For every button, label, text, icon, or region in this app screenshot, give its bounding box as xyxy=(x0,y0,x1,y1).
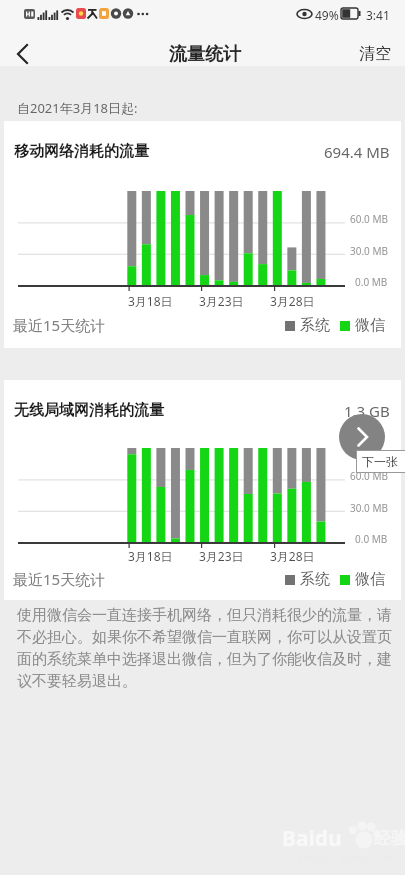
button[interactable]: 清空 xyxy=(359,44,405,64)
staticText: 30.0 MB xyxy=(350,244,388,258)
staticText: 自2021年3月18日起: xyxy=(17,99,138,117)
staticText: 3月23日 xyxy=(199,293,244,309)
button[interactable]: 下一张 xyxy=(356,450,405,473)
staticText: 0.0 MB xyxy=(355,532,388,546)
staticText: 3月18日 xyxy=(128,293,173,309)
staticText: Baidu xyxy=(282,824,342,853)
staticText: 无线局域网消耗的流量 xyxy=(14,401,164,420)
staticText: 使用微信会一直连接手机网络，但只消耗很少的流量，请 不必担心。如果你不希望微信一… xyxy=(17,606,392,691)
staticText: 60.0 MB xyxy=(350,212,388,226)
staticText: 3月28日 xyxy=(270,548,315,564)
staticText: 微信 xyxy=(355,316,385,335)
staticText: 3月18日 xyxy=(128,548,173,564)
staticText: 清空 xyxy=(359,44,391,64)
staticText: 3:41 xyxy=(366,7,390,23)
staticText: 3月28日 xyxy=(270,293,315,309)
staticText: 最近15天统计 xyxy=(13,315,106,335)
staticText: 移动网络消耗的流量 xyxy=(14,142,149,161)
staticText: 694.4 MB xyxy=(324,142,390,162)
button[interactable] xyxy=(6,38,38,70)
staticText: 30.0 MB xyxy=(350,501,388,515)
staticText: 系统 xyxy=(300,316,330,335)
staticText: 60.0 MB xyxy=(350,469,388,483)
staticText: 微信 xyxy=(355,570,385,589)
button[interactable] xyxy=(339,414,385,460)
staticText: 3月23日 xyxy=(199,548,244,564)
staticText: 经验 xyxy=(374,828,405,849)
staticText: 0.0 MB xyxy=(355,275,388,289)
staticText: 下一张 xyxy=(362,454,398,469)
staticText: 系统 xyxy=(300,570,330,589)
staticText: 最近15天统计 xyxy=(13,569,106,589)
staticText: 49% xyxy=(315,7,339,23)
staticText: 流量统计 xyxy=(169,43,241,66)
staticText: 1.3 GB xyxy=(344,401,390,421)
